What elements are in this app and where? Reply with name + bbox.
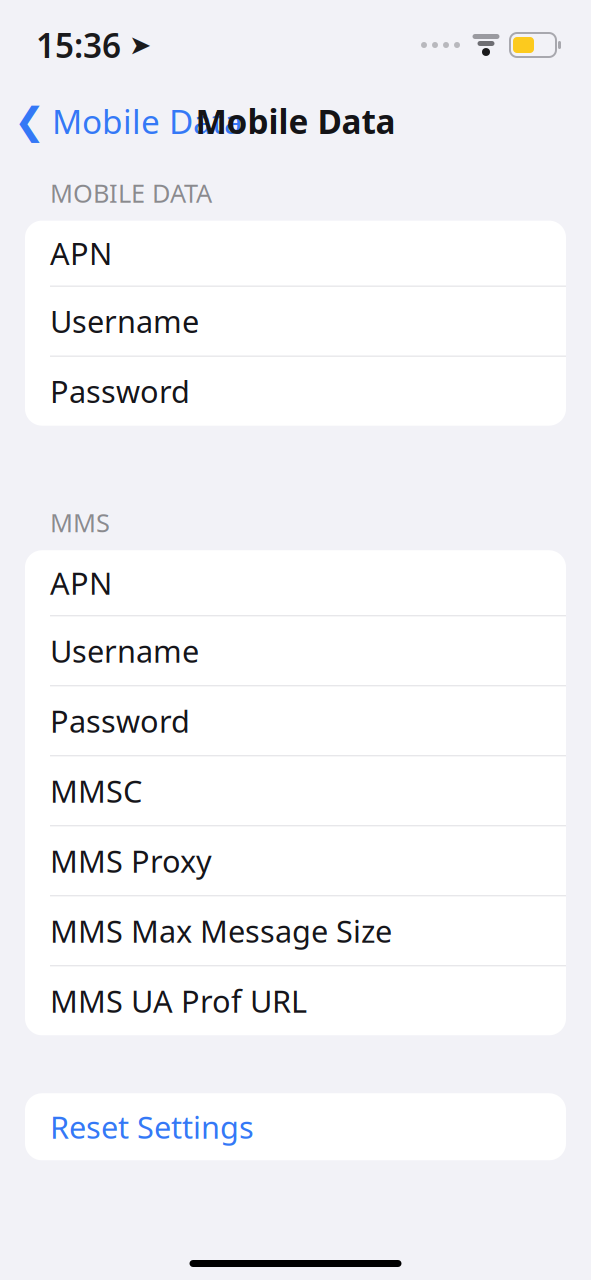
button[interactable]: MMSC [25,756,566,825]
button[interactable]: MMS Proxy [25,826,566,895]
staticText: Password [50,700,190,741]
staticText: APN [50,562,112,603]
staticText: Mobile Data [52,99,243,143]
button[interactable]: MMS UA Prof URL [25,966,566,1035]
staticText: MOBILE DATA [50,176,212,210]
staticText: MMS Proxy [50,840,212,881]
button[interactable]: Username [25,287,566,356]
button[interactable]: Reset Settings [25,1093,566,1160]
staticText: MMS [50,506,110,539]
staticText: Username [50,630,199,671]
button[interactable]: Username [25,616,566,685]
staticText: Password [50,371,190,411]
staticText: Mobile Data [195,99,395,143]
button[interactable]: APN [25,221,566,286]
button[interactable]: Password [25,357,566,426]
staticText: MMSC [50,770,142,811]
button[interactable]: ❮ [0,93,243,149]
button[interactable]: APN [25,550,566,615]
staticText: Reset Settings [50,1106,254,1147]
staticText: ❮ [14,100,45,142]
staticText: APN [50,233,112,273]
staticText: MMS UA Prof URL [50,980,307,1021]
button[interactable]: Password [25,686,566,755]
button[interactable]: MMS Max Message Size [25,896,566,965]
staticText: Username [50,301,199,341]
staticText: ➤ [129,30,151,60]
staticText: MMS Max Message Size [50,910,392,951]
staticText: 15:36 [36,23,121,67]
